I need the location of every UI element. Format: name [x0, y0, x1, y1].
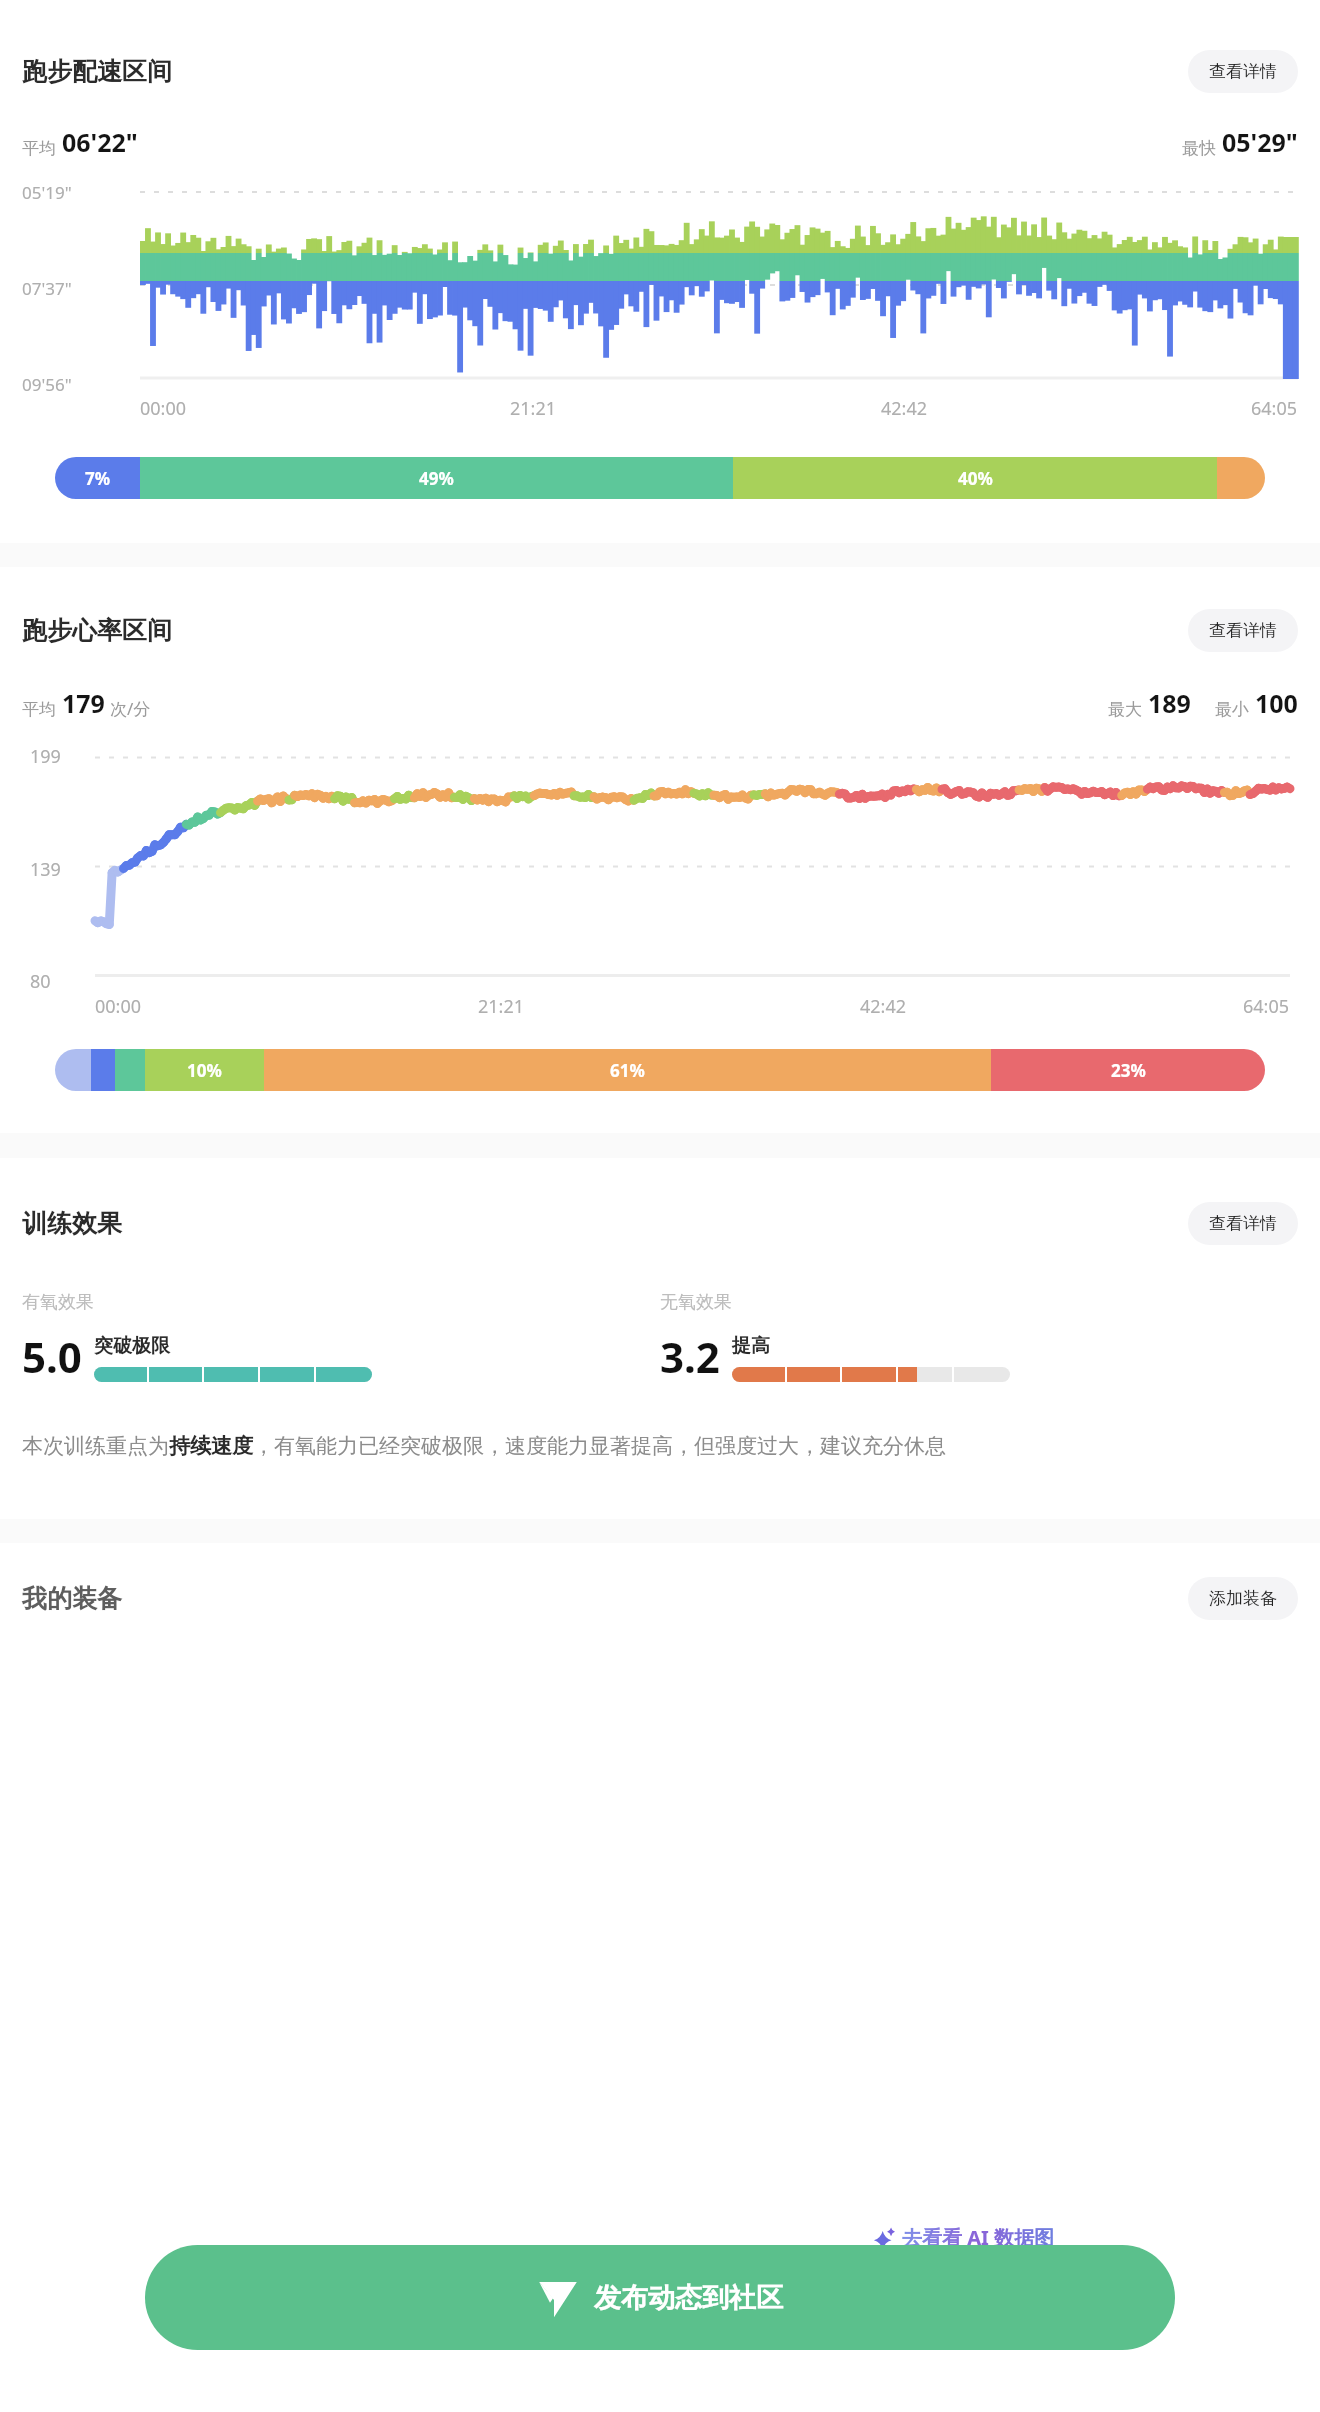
staticText: 100 [1255, 686, 1298, 720]
staticText: 3.2 [660, 1328, 720, 1385]
staticText: 40% [958, 467, 993, 490]
staticText: 发布动态到社区 [594, 2281, 783, 2315]
staticText: 5.0 [22, 1328, 82, 1385]
staticText: 00:00 [95, 994, 142, 1019]
staticText: 64:05 [1243, 994, 1290, 1019]
staticText: 189 [1148, 686, 1191, 720]
staticText: 跑步心率区间 [22, 615, 172, 646]
staticText: 61% [610, 1059, 645, 1082]
staticText: 有氧效果 [22, 1291, 94, 1314]
staticText: 23% [1111, 1059, 1146, 1082]
button[interactable]: 查看详情 [1188, 609, 1298, 652]
staticText: 21:21 [510, 396, 557, 421]
staticText: 05'19" [22, 181, 72, 204]
staticText: 05'29" [1222, 125, 1298, 159]
staticText: 09'56" [22, 373, 72, 396]
staticText: 42:42 [881, 396, 928, 421]
staticText: 提高 [732, 1334, 770, 1358]
button[interactable]: 添加装备 [1188, 1577, 1298, 1620]
staticText: 突破极限 [94, 1334, 170, 1358]
staticText: 199 [30, 744, 61, 769]
staticText: 查看详情 [1209, 61, 1277, 82]
staticText: 我的装备 [22, 1583, 122, 1614]
button[interactable]: 发布动态到社区 [145, 2245, 1175, 2350]
staticText: 42:42 [860, 994, 907, 1019]
staticText: 07'37" [22, 277, 72, 300]
staticText: 最快 [1182, 138, 1216, 159]
staticText: 无氧效果 [660, 1291, 732, 1314]
staticText: 最大 [1108, 699, 1142, 720]
button[interactable]: 查看详情 [1188, 50, 1298, 93]
staticText: 80 [30, 969, 51, 994]
staticText: 21:21 [478, 994, 525, 1019]
staticText: 64:05 [1251, 396, 1298, 421]
staticText: 179 [62, 686, 105, 720]
button[interactable]: 查看详情 [1188, 1202, 1298, 1245]
staticText: 00:00 [140, 396, 187, 421]
staticText: 最小 [1215, 699, 1249, 720]
staticText: 平均 [22, 699, 56, 720]
staticText: 06'22" [62, 125, 138, 159]
staticText: 139 [30, 857, 61, 882]
staticText: 添加装备 [1209, 1588, 1277, 1609]
button[interactable]: 去看看 AI 数据图 [855, 2213, 1073, 2262]
staticText: 平均 [22, 138, 56, 159]
staticText: 次/分 [110, 697, 151, 720]
staticText: 跑步配速区间 [22, 56, 172, 87]
staticText: 去看看 AI 数据图 [902, 2224, 1055, 2251]
staticText: 查看详情 [1209, 620, 1277, 641]
staticText: 7% [85, 467, 111, 490]
staticText: 本次训练重点为持续速度，有氧能力已经突破极限，速度能力显著提高，但强度过大，建议… [22, 1433, 946, 1459]
staticText: 49% [419, 467, 454, 490]
staticText: 10% [187, 1059, 222, 1082]
staticText: 查看详情 [1209, 1213, 1277, 1234]
staticText: 训练效果 [22, 1208, 122, 1239]
